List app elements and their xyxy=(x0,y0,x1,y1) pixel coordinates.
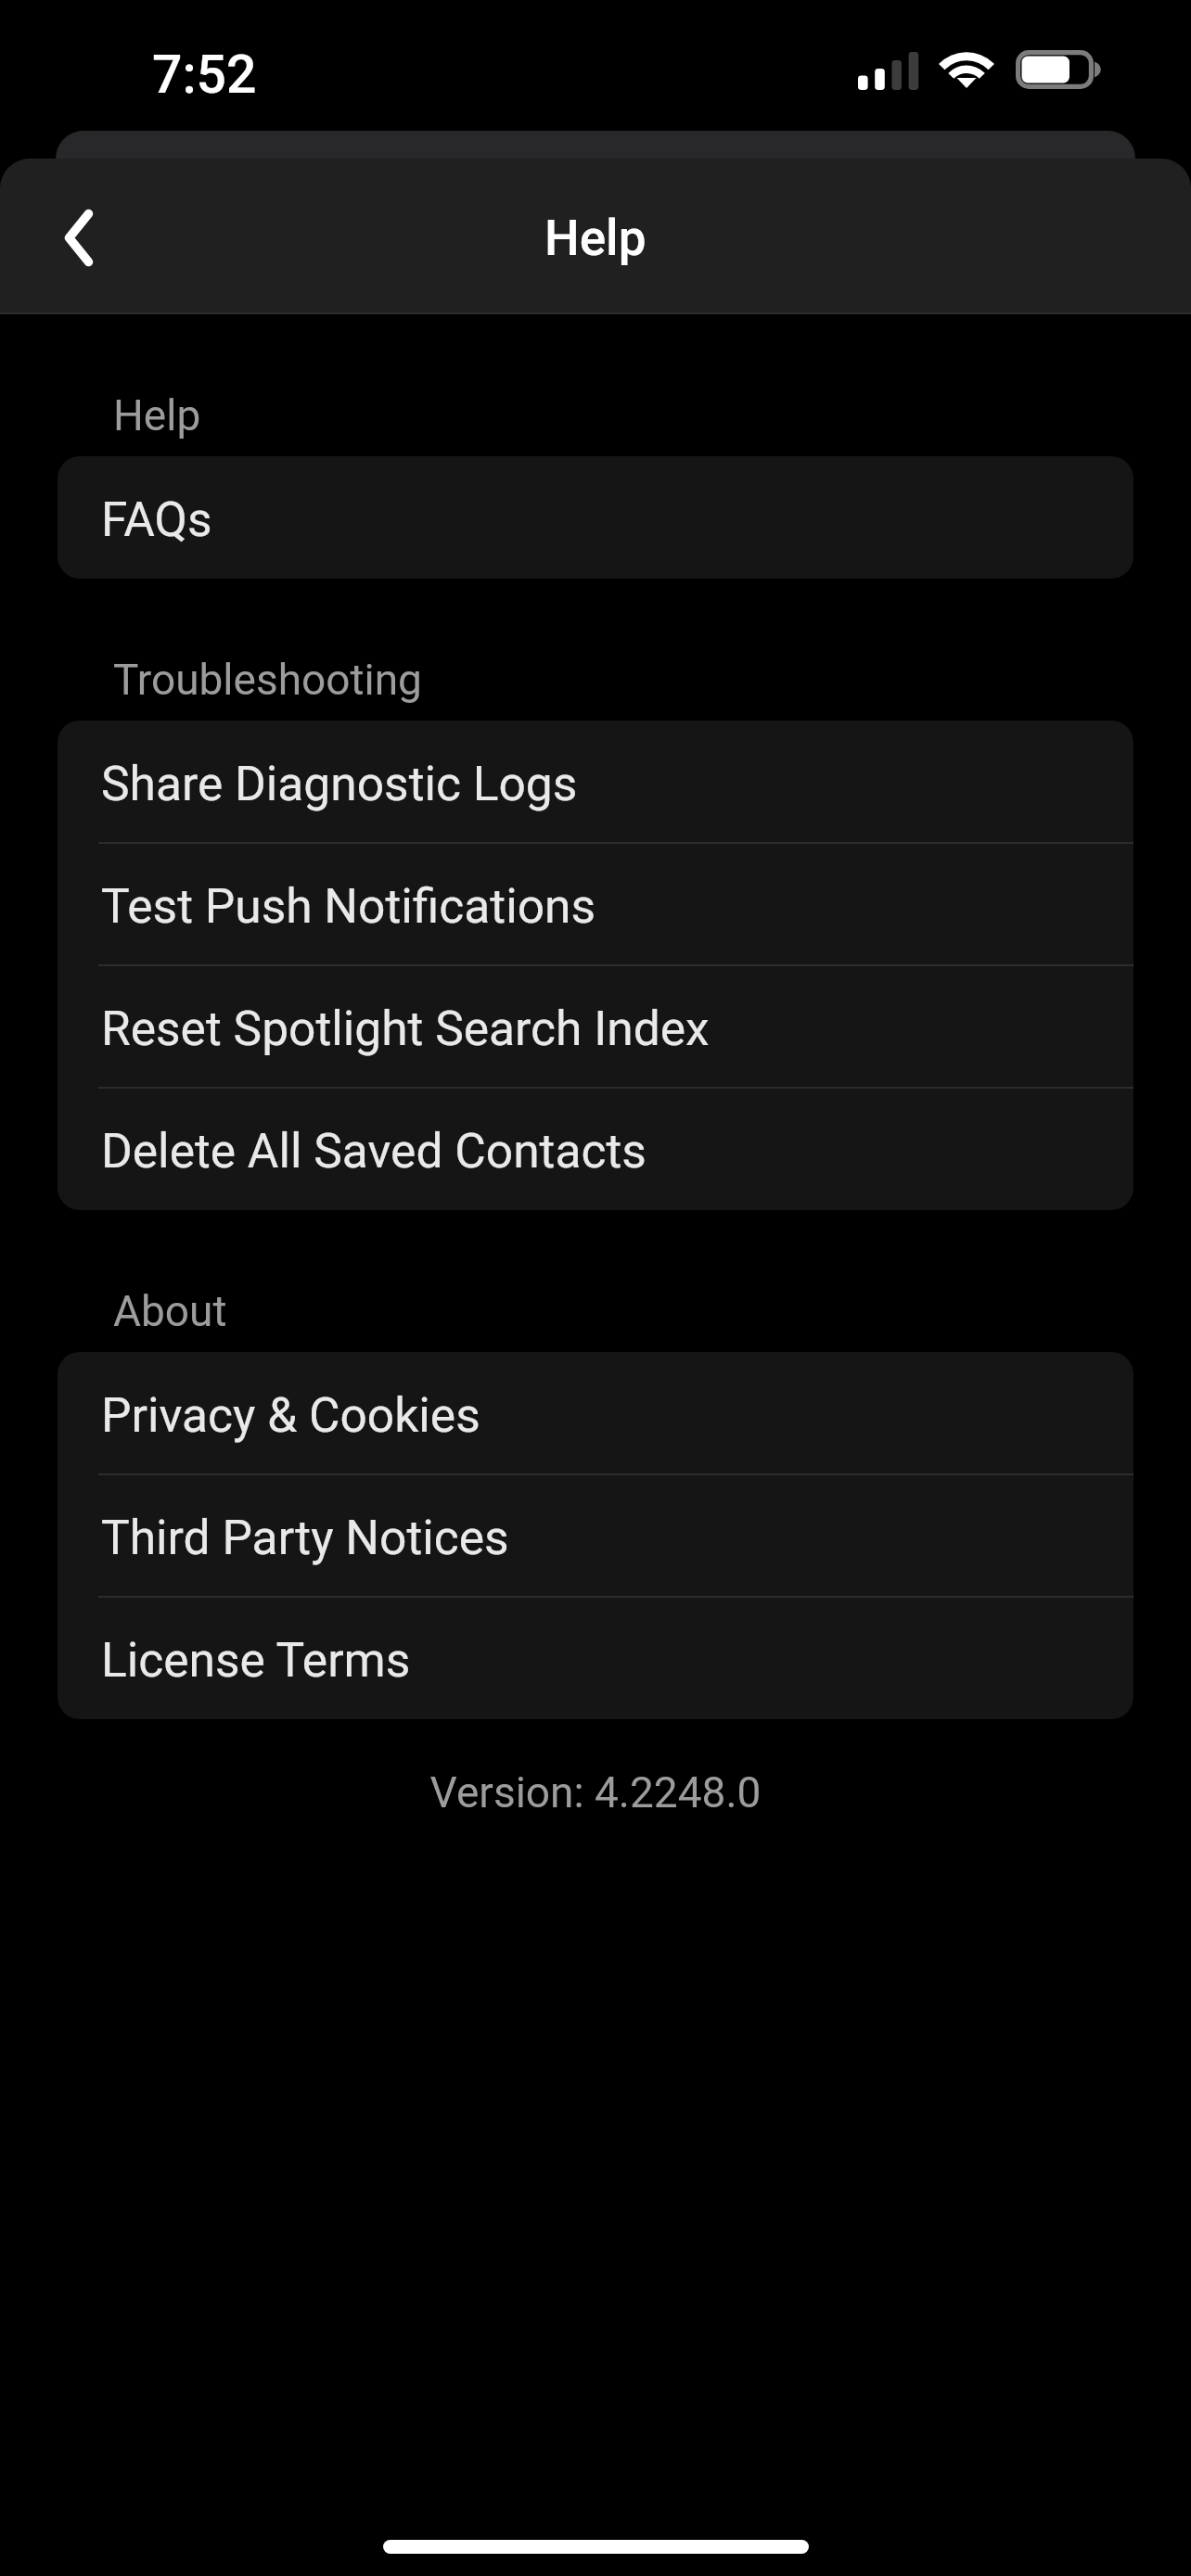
button[interactable]: Reset Spotlight Search Index xyxy=(58,965,1133,1088)
staticText: License Terms xyxy=(101,1632,411,1688)
staticText: Troubleshooting xyxy=(113,655,422,705)
staticText: Version: 4.2248.0 xyxy=(0,1767,1191,1817)
staticText: Reset Spotlight Search Index xyxy=(101,1001,710,1056)
button[interactable]: License Terms xyxy=(58,1597,1133,1719)
staticText: Test Push Notifications xyxy=(101,878,596,934)
button[interactable]: Privacy & Cookies xyxy=(58,1352,1133,1474)
staticText: 7:52 xyxy=(152,44,257,106)
button[interactable]: Back xyxy=(32,192,125,283)
button[interactable]: Share Diagnostic Logs xyxy=(58,721,1133,843)
button[interactable]: Test Push Notifications xyxy=(58,843,1133,965)
button[interactable]: Delete All Saved Contacts xyxy=(58,1088,1133,1210)
button[interactable]: FAQs xyxy=(58,456,1133,579)
staticText: Third Party Notices xyxy=(101,1510,509,1565)
staticText: Delete All Saved Contacts xyxy=(101,1123,647,1179)
staticText: Share Diagnostic Logs xyxy=(101,756,578,811)
staticText: Help xyxy=(544,210,647,267)
staticText: Help xyxy=(113,390,201,440)
staticText: About xyxy=(113,1286,227,1336)
button[interactable]: Third Party Notices xyxy=(58,1474,1133,1597)
staticText: FAQs xyxy=(101,491,212,547)
staticText: Privacy & Cookies xyxy=(101,1387,480,1443)
